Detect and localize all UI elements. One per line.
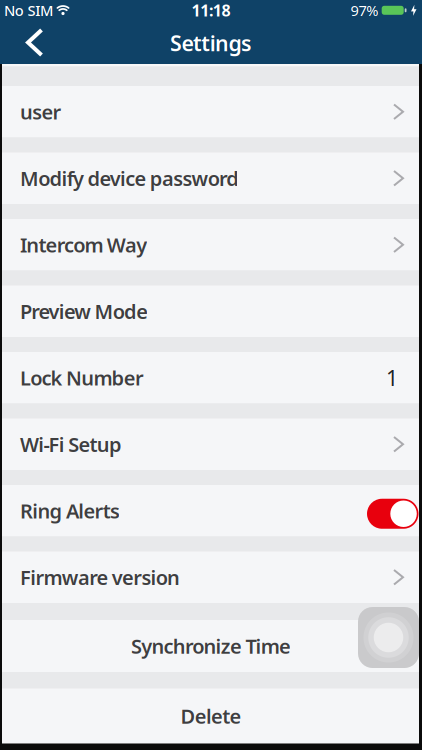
- button[interactable]: Intercom Way: [0, 219, 422, 270]
- button[interactable]: Modify device password: [0, 152, 422, 204]
- button[interactable]: [358, 607, 419, 668]
- button[interactable]: [0, 25, 422, 59]
- staticText: Firmware version: [20, 564, 180, 591]
- staticText: No SIM: [4, 1, 53, 20]
- button[interactable]: Preview Mode: [0, 285, 422, 337]
- staticText: 11:18: [191, 0, 231, 21]
- button[interactable]: Lock Number: [0, 352, 422, 403]
- staticText: 97%: [351, 1, 378, 20]
- button[interactable]: Firmware version: [0, 551, 422, 603]
- staticText: Intercom Way: [20, 231, 147, 258]
- button[interactable]: Delete: [0, 688, 422, 743]
- button[interactable]: Synchronize Time: [0, 620, 422, 672]
- staticText: Ring Alerts: [20, 497, 120, 524]
- staticText: Settings: [170, 29, 252, 57]
- staticText: Lock Number: [20, 364, 144, 391]
- staticText: Preview Mode: [20, 298, 148, 325]
- staticText: Synchronize Time: [131, 633, 291, 659]
- button[interactable]: user: [0, 86, 422, 137]
- staticText: Wi-Fi Setup: [20, 431, 122, 458]
- staticText: 1: [386, 364, 398, 392]
- staticText: Delete: [180, 703, 241, 729]
- staticText: Modify device password: [20, 165, 239, 192]
- button[interactable]: Ring Alerts: [0, 485, 422, 536]
- staticText: user: [20, 98, 62, 125]
- button[interactable]: Wi-Fi Setup: [0, 418, 422, 470]
